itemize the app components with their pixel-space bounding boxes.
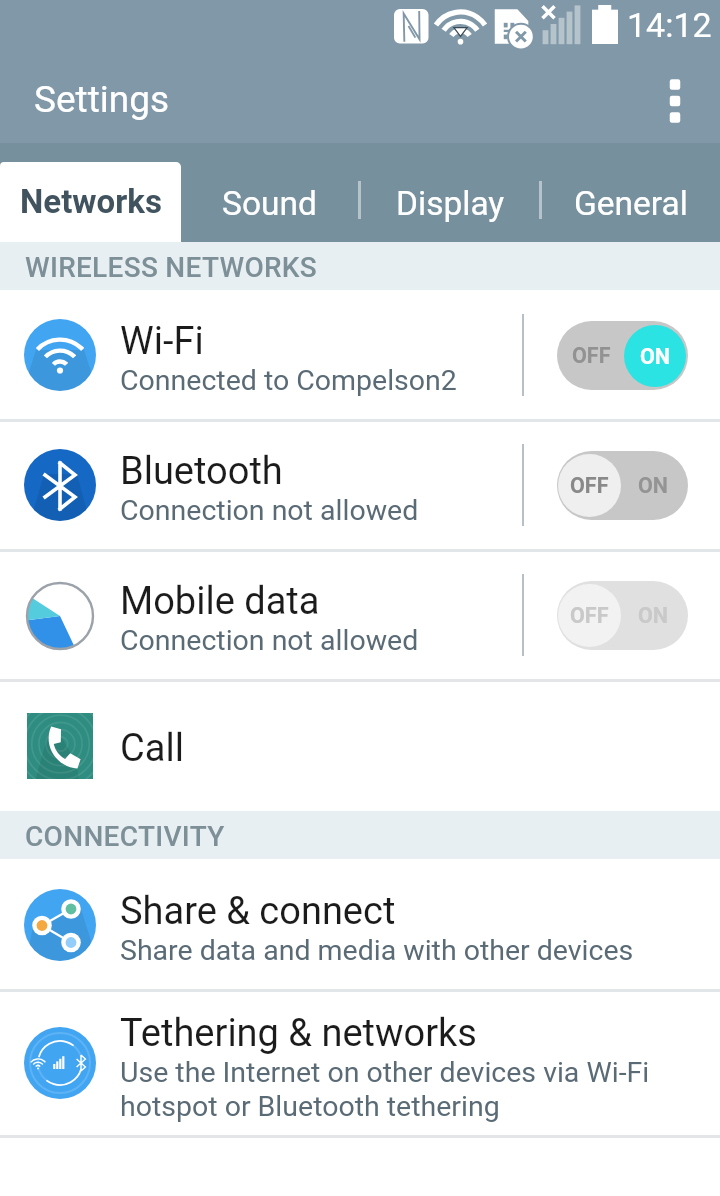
button[interactable]: Toggle Wi-Fi <box>524 290 720 420</box>
staticText: Use the Internet on other devices via Wi… <box>120 1056 688 1122</box>
staticText: Display <box>396 184 505 223</box>
staticText: 14:12 <box>627 5 712 45</box>
staticText: Share data and media with other devices <box>120 934 634 967</box>
button[interactable]: Toggle Mobile data <box>524 550 720 680</box>
staticText: Connected to Compelson2 <box>120 364 457 397</box>
staticText: Connection not allowed <box>120 624 419 657</box>
button[interactable]: Networks <box>0 143 181 242</box>
staticText: Tethering & networks <box>120 1011 477 1056</box>
staticText: OFF <box>572 343 611 368</box>
button[interactable]: Display <box>361 143 539 242</box>
staticText: Networks <box>20 182 162 221</box>
staticText: Wi-Fi <box>120 319 204 364</box>
staticText: WIRELESS NETWORKS <box>25 251 318 284</box>
staticText: ON <box>640 344 671 369</box>
staticText: Share & connect <box>120 889 396 934</box>
staticText: Call <box>120 726 184 771</box>
staticText: ON <box>638 473 669 498</box>
button[interactable]: Toggle Bluetooth <box>524 420 720 550</box>
button[interactable]: Mobile data <box>0 550 720 680</box>
staticText: Sound <box>222 184 317 223</box>
staticText: CONNECTIVITY <box>25 820 225 853</box>
staticText: ON <box>638 603 669 628</box>
staticText: OFF <box>570 603 609 628</box>
staticText: OFF <box>570 473 609 498</box>
button[interactable]: Share & connect <box>0 859 720 990</box>
staticText: Bluetooth <box>120 449 283 494</box>
staticText: Mobile data <box>120 579 320 624</box>
button[interactable]: Bluetooth <box>0 420 720 550</box>
staticText: General <box>574 184 688 223</box>
button[interactable]: Call <box>0 680 720 811</box>
staticText: Connection not allowed <box>120 494 419 527</box>
button[interactable]: Wi-Fi <box>0 290 720 420</box>
staticText: Settings <box>34 78 170 121</box>
button[interactable]: Tethering & networks <box>0 990 720 1136</box>
button[interactable]: Sound <box>181 143 358 242</box>
button[interactable]: More options <box>630 58 720 143</box>
button[interactable]: General <box>542 143 720 242</box>
